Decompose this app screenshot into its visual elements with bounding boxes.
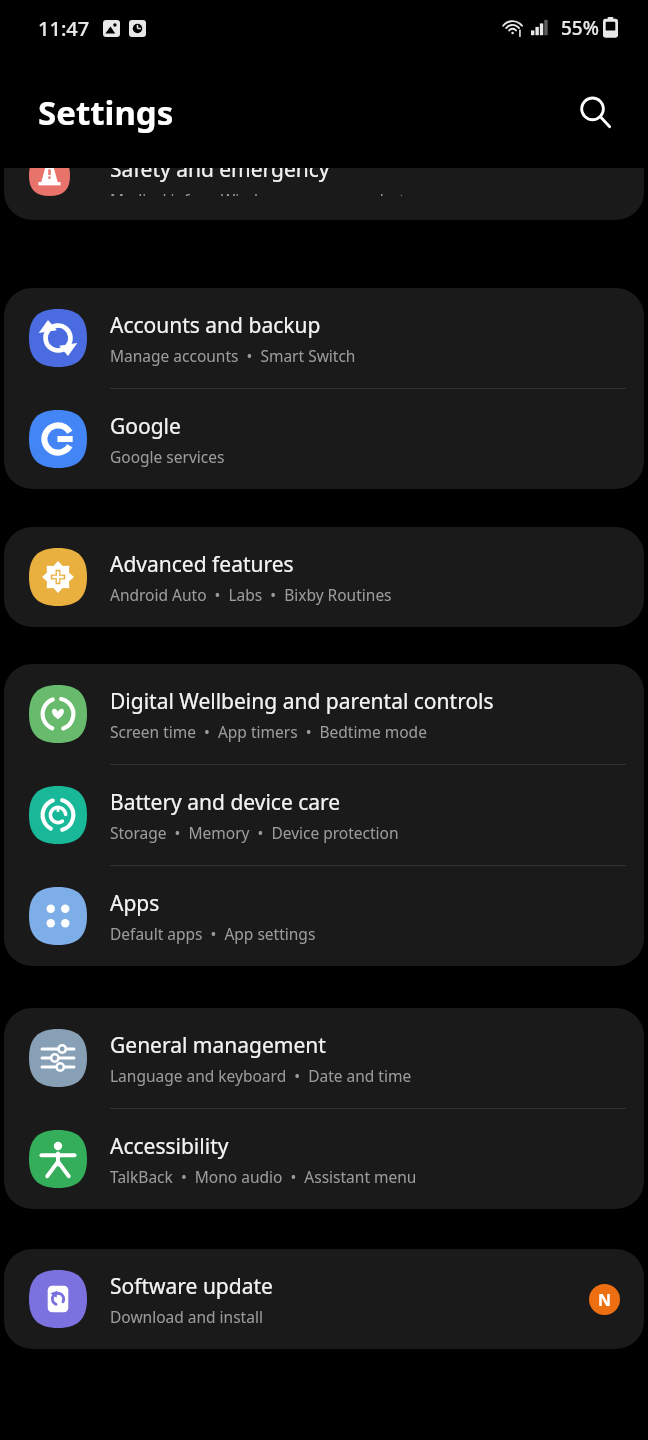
staticText: General management: [110, 1031, 326, 1060]
staticText: 11:47: [38, 15, 90, 42]
staticText: Manage accounts • Smart Switch: [110, 345, 356, 366]
staticText: Android Auto • Labs • Bixby Routines: [110, 584, 392, 605]
staticText: Medical info • Wireless emergency alerts: [110, 189, 412, 196]
staticText: Accounts and backup: [110, 311, 321, 340]
staticText: Accessibility: [110, 1132, 229, 1161]
button[interactable]: Search: [568, 85, 622, 139]
staticText: TalkBack • Mono audio • Assistant menu: [110, 1166, 417, 1187]
button[interactable]: General management: [4, 1008, 644, 1108]
staticText: Advanced features: [110, 550, 294, 579]
staticText: 55%: [561, 15, 599, 41]
staticText: Safety and emergency: [110, 168, 330, 184]
staticText: Storage • Memory • Device protection: [110, 822, 399, 843]
staticText: Google: [110, 412, 181, 441]
button[interactable]: Battery and device care: [4, 765, 644, 865]
staticText: Battery and device care: [110, 788, 341, 817]
staticText: Language and keyboard • Date and time: [110, 1065, 412, 1086]
button[interactable]: Digital Wellbeing and parental controls: [4, 664, 644, 764]
staticText: Google services: [110, 446, 225, 467]
staticText: Download and install: [110, 1306, 263, 1327]
staticText: Settings: [38, 90, 174, 135]
staticText: Apps: [110, 889, 160, 918]
button[interactable]: Apps: [4, 866, 644, 966]
button[interactable]: Google: [4, 389, 644, 489]
button[interactable]: Accessibility: [4, 1109, 644, 1209]
button[interactable]: Safety and emergency: [4, 168, 644, 220]
staticText: Software update: [110, 1272, 273, 1301]
button[interactable]: Advanced features: [4, 527, 644, 627]
button[interactable]: Software update: [4, 1249, 644, 1349]
staticText: Screen time • App timers • Bedtime mode: [110, 721, 427, 742]
button[interactable]: Accounts and backup: [4, 288, 644, 388]
staticText: Default apps • App settings: [110, 923, 316, 944]
staticText: N: [598, 1289, 612, 1311]
staticText: Digital Wellbeing and parental controls: [110, 687, 494, 716]
